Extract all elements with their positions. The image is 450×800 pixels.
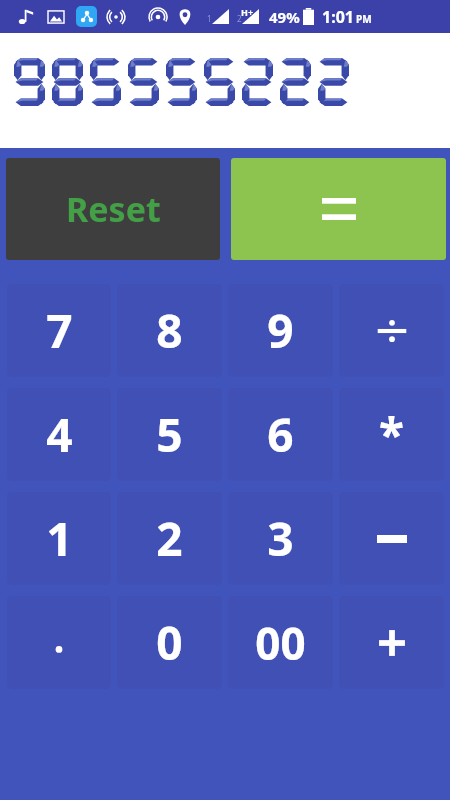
staticText: 7 (46, 299, 73, 362)
staticText: 4 (46, 403, 73, 466)
staticText: 2 (237, 13, 242, 24)
button[interactable]: Subtract (339, 492, 444, 585)
staticText: PM (356, 12, 372, 26)
staticText: 8 (156, 299, 183, 362)
button[interactable]: 9 (228, 284, 333, 377)
button[interactable]: 3 (228, 492, 333, 585)
staticText: H+ (241, 6, 254, 18)
button[interactable]: 00 (228, 596, 333, 689)
staticText: 1 (207, 13, 212, 24)
button[interactable]: Equals (231, 158, 446, 260)
button[interactable]: Reset (6, 158, 220, 260)
staticText: 3 (267, 507, 294, 570)
staticText: 6 (267, 403, 294, 466)
button[interactable]: 4 (7, 388, 111, 481)
button[interactable]: 1 (7, 492, 111, 585)
staticText: 2 (156, 507, 183, 570)
staticText: 1 (46, 507, 73, 570)
staticText: 00 (255, 613, 306, 673)
staticText: 1:01 (322, 6, 354, 28)
button[interactable]: Add (339, 596, 444, 689)
staticText: 49% (269, 7, 300, 27)
button[interactable]: 8 (117, 284, 222, 377)
button[interactable]: Divide (339, 284, 444, 377)
button[interactable]: 7 (7, 284, 111, 377)
staticText: 5 (156, 403, 183, 466)
staticText: 0 (156, 611, 183, 674)
button[interactable]: Multiply (339, 388, 444, 481)
button[interactable]: Decimal point (7, 596, 111, 689)
button[interactable]: 2 (117, 492, 222, 585)
staticText: Reset (66, 186, 161, 232)
staticText: 9 (267, 299, 294, 362)
button[interactable]: 6 (228, 388, 333, 481)
staticText: * (379, 403, 404, 466)
button[interactable]: 0 (117, 596, 222, 689)
button[interactable]: 5 (117, 388, 222, 481)
